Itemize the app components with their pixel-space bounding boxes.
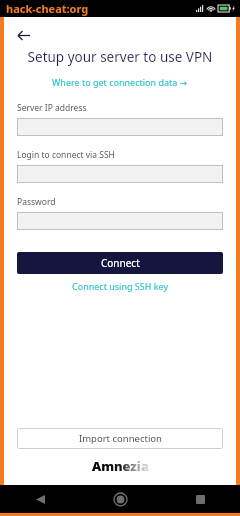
button[interactable]: Where to get connection data → [4, 76, 236, 88]
button[interactable]: Connect [17, 252, 223, 274]
staticText: Connect using SSH key [72, 280, 169, 292]
staticText: Import connection [79, 432, 162, 445]
button[interactable]: Connect using SSH key [17, 280, 223, 292]
button[interactable]: Back [12, 24, 34, 46]
button[interactable]: Text field [17, 212, 223, 230]
button[interactable]: Recents [186, 485, 214, 513]
staticText: Password [17, 196, 56, 208]
button[interactable]: Import connection [17, 428, 223, 449]
button[interactable]: Back [26, 485, 54, 513]
staticText: Setup your server to use VPN [10, 48, 230, 66]
button[interactable]: Text field [17, 118, 223, 136]
staticText: hack-cheat:org [6, 1, 89, 16]
staticText: Where to get connection data → [52, 76, 188, 88]
staticText: Connect [101, 256, 140, 270]
staticText: Amnezia [92, 457, 149, 475]
button[interactable]: Text field [17, 165, 223, 183]
staticText: Login to connect via SSH [17, 149, 115, 161]
staticText: Server IP address [17, 102, 87, 114]
button[interactable]: Home [106, 485, 134, 513]
